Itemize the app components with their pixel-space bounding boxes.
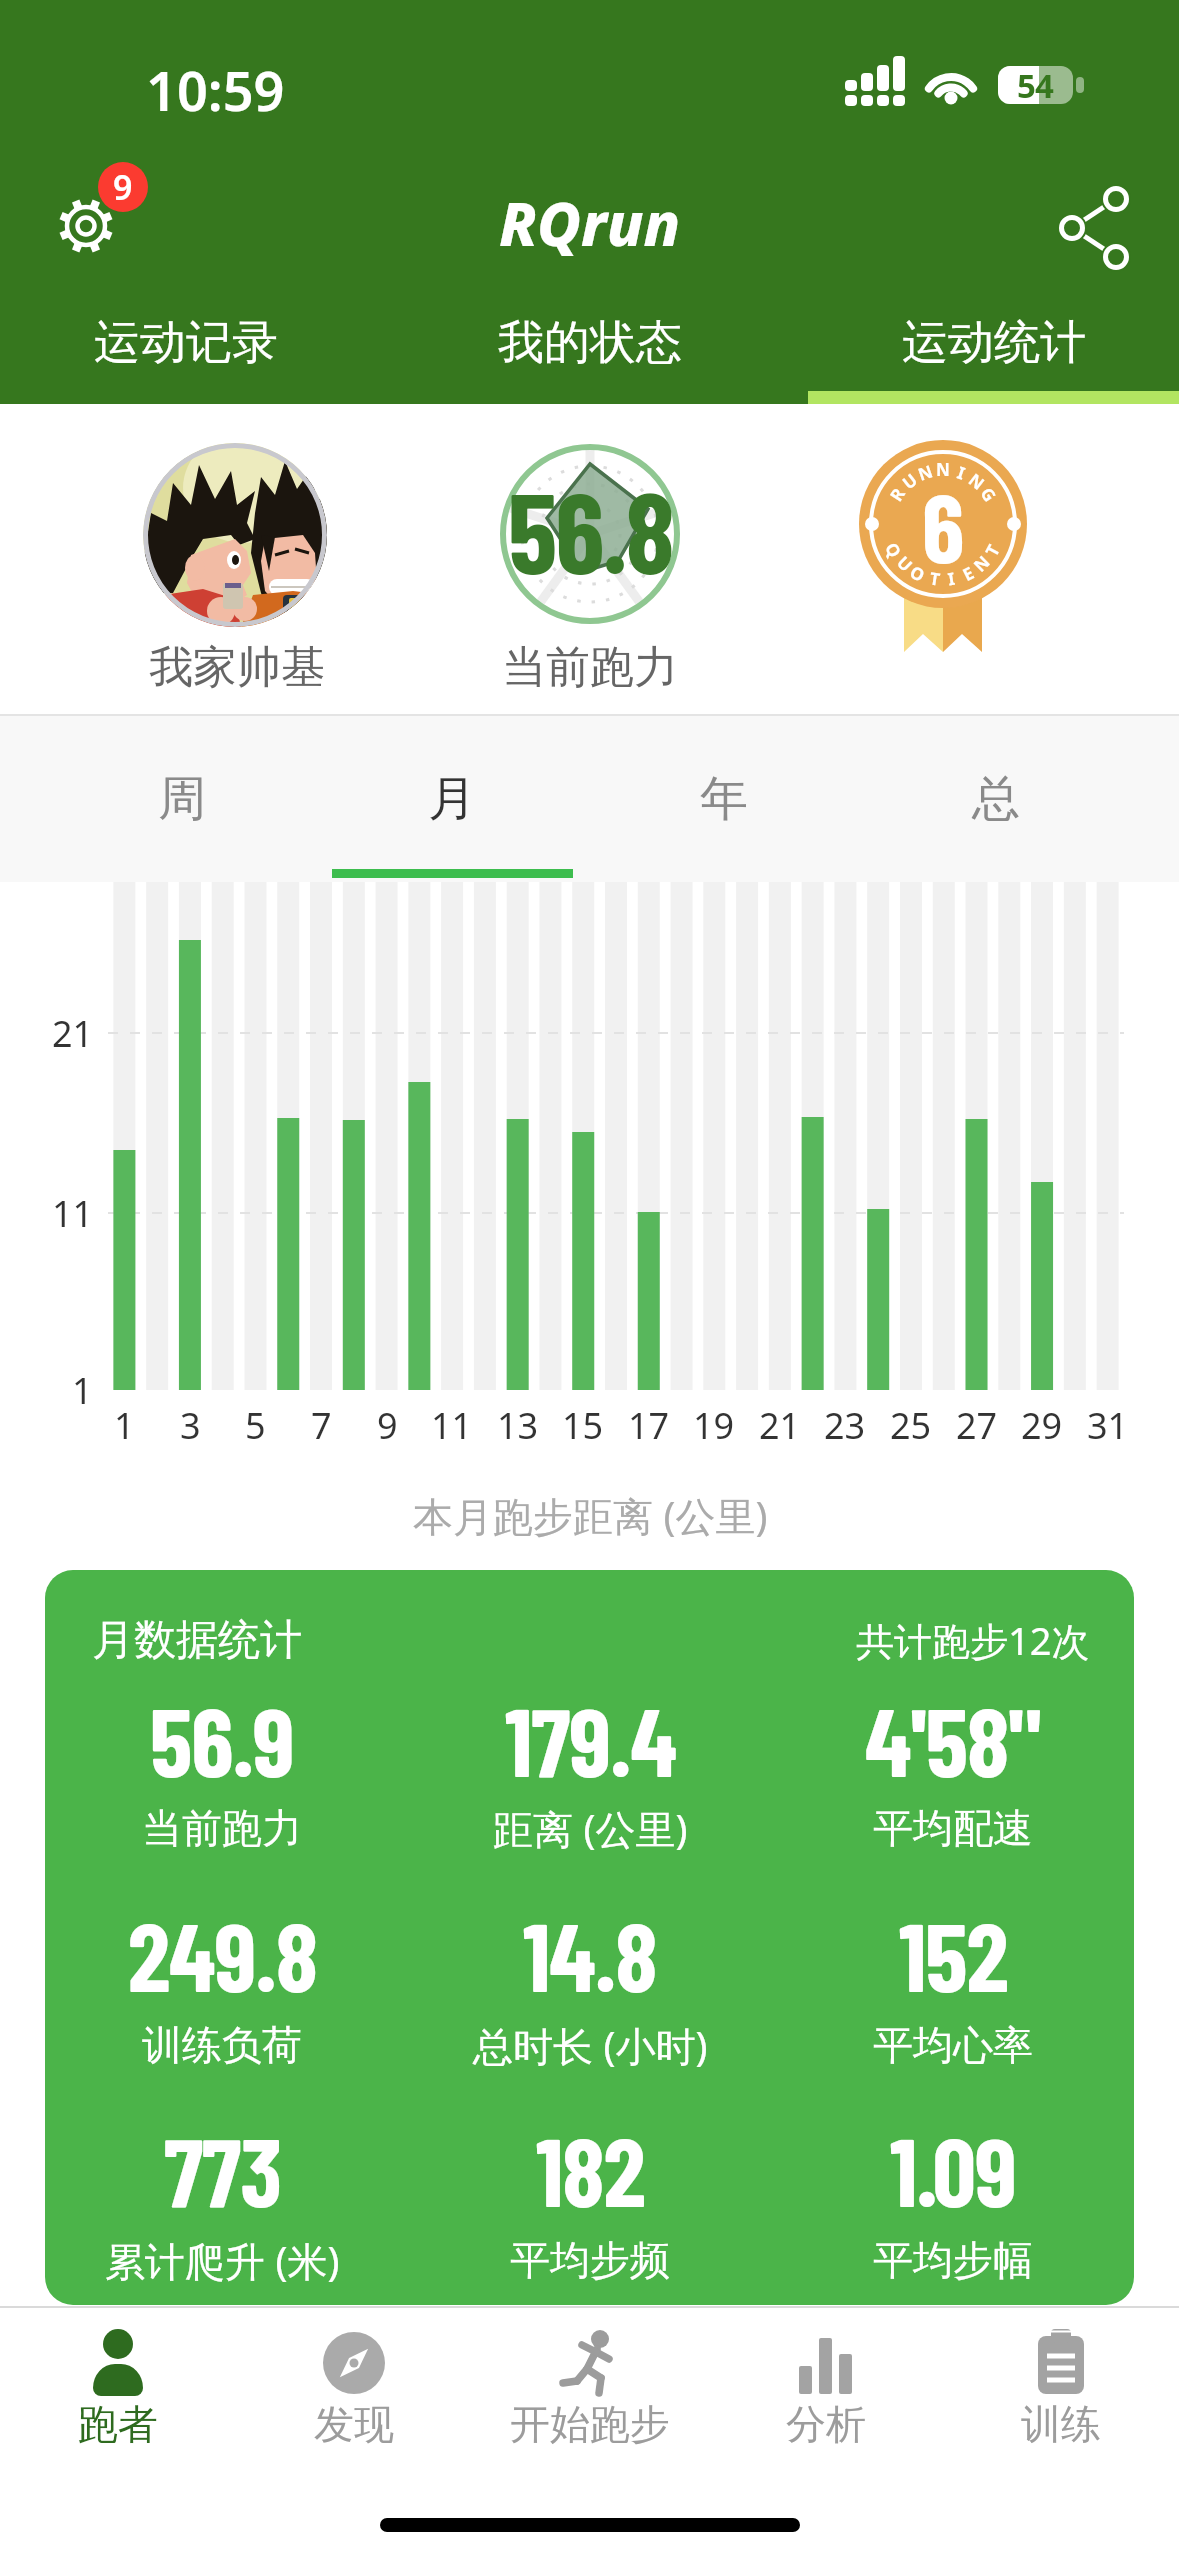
button[interactable] [143, 443, 327, 627]
button[interactable]: 年 [599, 739, 849, 859]
staticText: E [959, 561, 978, 586]
staticText: 14.8 [523, 1896, 657, 2011]
button[interactable] [58, 2320, 178, 2450]
staticText: 9 [377, 1401, 398, 1450]
staticText: I [954, 461, 968, 485]
staticText: N [915, 459, 935, 486]
staticText: R [884, 483, 910, 506]
staticText: 15 [562, 1401, 604, 1450]
staticText: 当前跑力 [142, 1803, 302, 1853]
staticText: 19 [693, 1401, 735, 1450]
staticText: G [976, 483, 1002, 506]
button[interactable] [766, 2320, 886, 2450]
staticText: I [946, 566, 957, 590]
button[interactable] [1056, 187, 1136, 267]
button[interactable]: 总 [871, 739, 1121, 859]
staticText: 179.4 [505, 1681, 676, 1796]
staticText: U [897, 468, 922, 494]
staticText: 1.09 [890, 2111, 1016, 2226]
button[interactable]: 月 [327, 739, 577, 859]
staticText: 运动记录 [94, 314, 278, 372]
staticText: RQrun [499, 182, 681, 264]
staticText: 总 [972, 769, 1020, 829]
button[interactable] [530, 2320, 650, 2450]
staticText: 182 [536, 2111, 645, 2226]
staticText: 总时长 (小时) [473, 2018, 708, 2073]
staticText: 月 [428, 769, 476, 829]
staticText: 训练 [1021, 2399, 1101, 2449]
button[interactable] [45, 1570, 1134, 2305]
button[interactable]: 我的状态 [400, 298, 780, 388]
button[interactable] [51, 191, 121, 261]
staticText: 运动统计 [902, 314, 1086, 372]
staticText: 周 [158, 769, 206, 829]
staticText: N [936, 458, 950, 481]
staticText: 我的状态 [498, 314, 682, 372]
staticText: 累计爬升 (米) [105, 2233, 340, 2288]
staticText: 56.9 [150, 1681, 294, 1796]
staticText: 训练负荷 [142, 2020, 302, 2070]
button[interactable] [1001, 2320, 1121, 2450]
staticText: 平均步幅 [873, 2235, 1033, 2285]
staticText: 5 [245, 1401, 266, 1450]
staticText: 平均步频 [510, 2235, 670, 2285]
staticText: O [906, 560, 929, 587]
staticText: U [892, 551, 918, 576]
staticText: 1 [114, 1401, 135, 1450]
staticText: 54 [1017, 63, 1053, 108]
staticText: 6 [922, 467, 965, 582]
staticText: 23 [824, 1401, 866, 1450]
staticText: 56.8 [508, 462, 673, 596]
staticText: 17 [628, 1401, 670, 1450]
staticText: 年 [700, 769, 748, 829]
staticText: N [964, 468, 989, 495]
staticText: 平均心率 [873, 2020, 1033, 2070]
staticText: T [928, 566, 942, 591]
staticText: 11 [52, 1189, 94, 1238]
staticText: N [968, 550, 994, 576]
staticText: 分析 [786, 2399, 866, 2449]
button[interactable]: 运动记录 [0, 298, 376, 388]
staticText: 773 [164, 2111, 281, 2226]
staticText: 21 [759, 1401, 801, 1450]
staticText: 11 [431, 1401, 473, 1450]
staticText: 152 [899, 1896, 1008, 2011]
staticText: 25 [890, 1401, 932, 1450]
staticText: 4'58" [865, 1681, 1041, 1796]
staticText: 3 [180, 1401, 201, 1450]
staticText: 跑者 [78, 2399, 158, 2449]
staticText: 开始跑步 [510, 2399, 670, 2449]
staticText: 9 [113, 164, 133, 210]
staticText: 我家帅基 [149, 640, 325, 695]
staticText: 共计跑步12次 [856, 1614, 1090, 1666]
staticText: 月数据统计 [92, 1614, 302, 1667]
staticText: 29 [1021, 1401, 1063, 1450]
staticText: 249.8 [128, 1896, 317, 2011]
staticText: 31 [1087, 1401, 1129, 1450]
staticText: 发现 [314, 2399, 394, 2449]
staticText: 距离 (公里) [493, 1801, 688, 1856]
staticText: 21 [52, 1009, 94, 1058]
staticText: 当前跑力 [502, 640, 678, 695]
staticText: Q [880, 539, 907, 562]
staticText: 10:59 [146, 53, 285, 127]
staticText: 13 [497, 1401, 539, 1450]
staticText: 平均配速 [873, 1803, 1033, 1853]
staticText: 27 [956, 1401, 998, 1450]
staticText: 本月跑步距离 (公里) [413, 1488, 768, 1543]
button[interactable]: 运动统计 [804, 298, 1179, 388]
staticText: T [980, 540, 1005, 560]
button[interactable] [294, 2320, 414, 2450]
staticText: 7 [311, 1401, 332, 1450]
staticText: 1 [72, 1366, 93, 1415]
button[interactable]: 周 [57, 739, 307, 859]
